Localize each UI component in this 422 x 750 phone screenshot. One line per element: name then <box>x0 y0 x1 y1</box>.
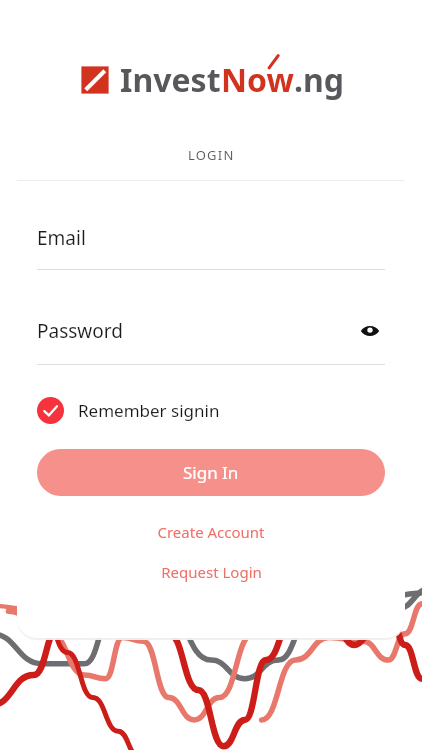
staticText: .ng <box>294 58 345 102</box>
button[interactable]: Remember signin <box>37 397 220 424</box>
staticText: Now <box>221 58 294 102</box>
staticText: Invest <box>120 58 221 102</box>
staticText: Sign In <box>183 461 239 484</box>
button[interactable]: Sign In <box>37 449 385 496</box>
button[interactable]: Create Account <box>17 522 405 542</box>
staticText: Request Login <box>161 562 262 582</box>
staticText: Email <box>37 225 86 251</box>
button[interactable]: Request Login <box>17 562 405 582</box>
staticText: LOGIN <box>188 146 235 164</box>
staticText: Remember signin <box>78 399 220 422</box>
button[interactable]: Show password <box>355 316 385 346</box>
staticText: Password <box>37 318 123 344</box>
staticText: Create Account <box>157 522 265 542</box>
